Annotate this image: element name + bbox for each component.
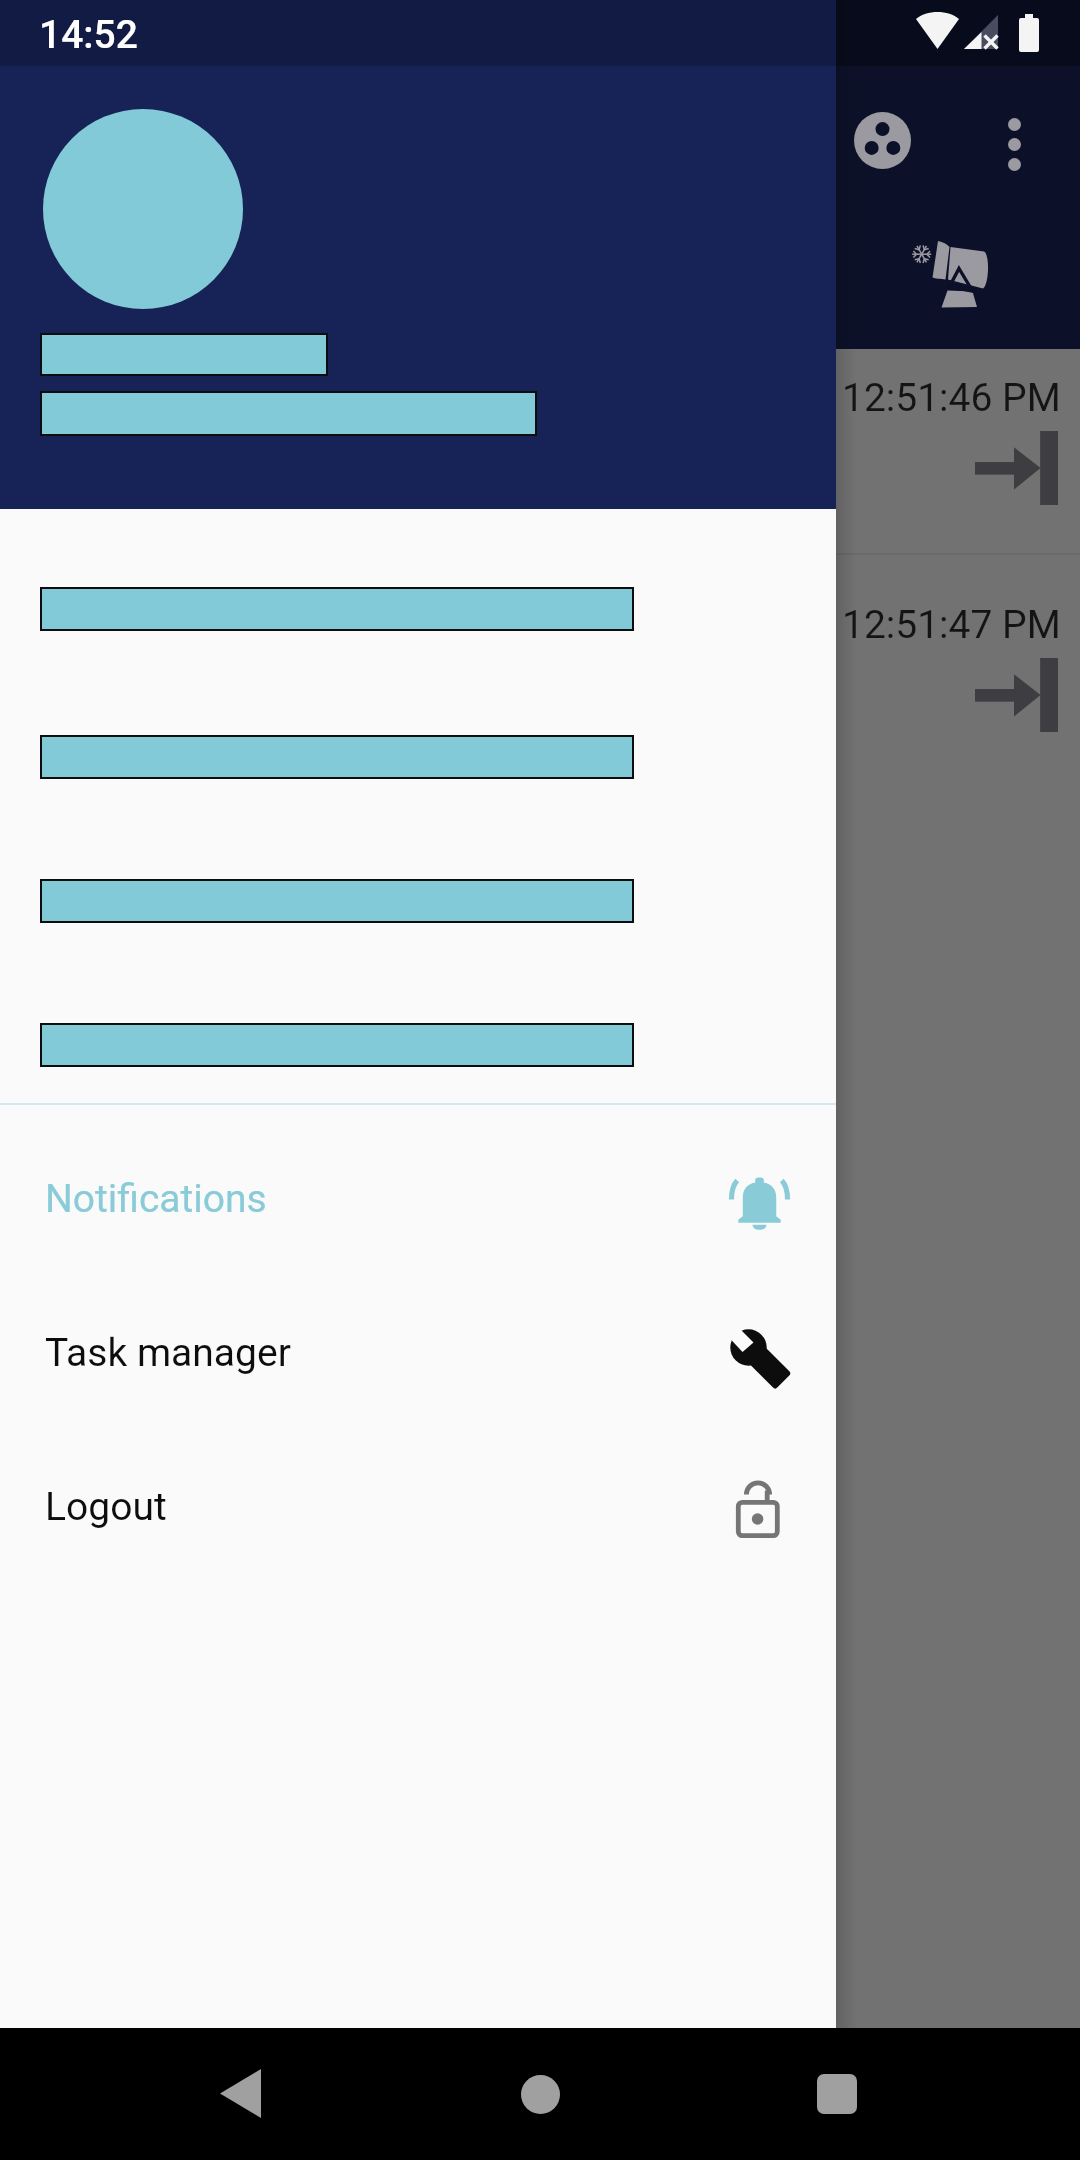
button[interactable]: 12:51:46 PM xyxy=(0,381,1080,585)
button[interactable]: 12:51:47 PM xyxy=(0,608,1080,812)
button[interactable]: Back xyxy=(150,2027,330,2159)
staticText: Task manager xyxy=(45,1330,291,1376)
button[interactable]: Task manager xyxy=(0,1276,836,1430)
other: Task manager xyxy=(725,1323,795,1393)
staticText: 12:51:47 PM xyxy=(842,602,1061,648)
other: Logout xyxy=(731,1475,787,1543)
staticText: Logout xyxy=(45,1484,167,1530)
staticText: 12:51:46 PM xyxy=(842,375,1061,421)
button[interactable]: Logout xyxy=(0,1430,836,1584)
button[interactable]: More options xyxy=(1008,118,1021,171)
staticText: Notifications xyxy=(45,1176,267,1222)
button[interactable]: Account xyxy=(854,112,911,169)
button[interactable]: Recents xyxy=(747,2028,927,2160)
button[interactable]: Notifications xyxy=(0,1122,836,1276)
button[interactable]: Home xyxy=(450,2028,630,2160)
other: Notifications xyxy=(728,1174,791,1237)
staticText: 14:52 xyxy=(39,12,138,58)
